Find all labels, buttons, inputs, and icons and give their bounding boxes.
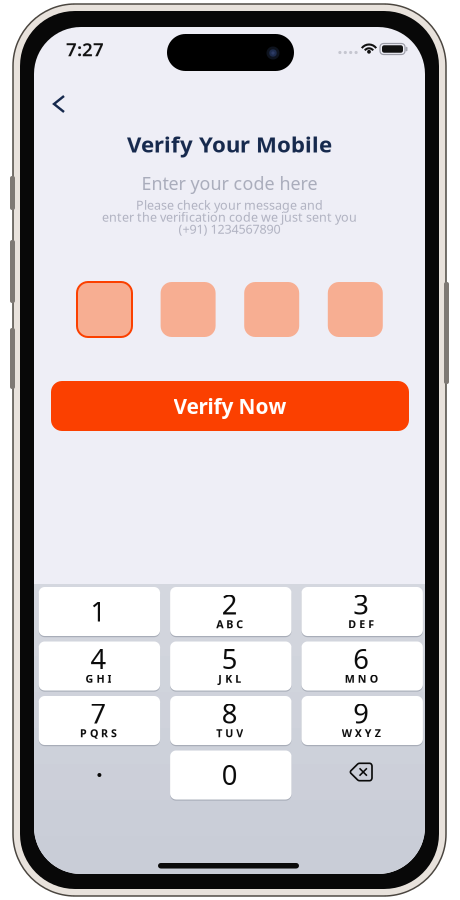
button[interactable]: Back (45, 89, 83, 129)
staticText: M N O (345, 671, 378, 686)
staticText: 6 (353, 640, 369, 677)
button[interactable]: Verification code digit (328, 282, 383, 337)
staticText: 1 (90, 592, 106, 630)
staticText: T U V (216, 726, 243, 740)
staticText: (+91) 1234567890 (178, 220, 280, 238)
button[interactable]: 3 (301, 587, 423, 636)
staticText: 4 (90, 640, 106, 677)
button[interactable]: 2 (170, 587, 291, 636)
staticText: Verify Your Mobile (127, 129, 332, 159)
staticText: 7 (90, 694, 106, 732)
staticText: 8 (222, 694, 238, 732)
button[interactable]: 9 (301, 696, 423, 745)
button[interactable]: 0 (170, 750, 291, 799)
button[interactable]: 4 (39, 641, 160, 690)
button[interactable]: Verification code digit (161, 282, 216, 337)
staticText: 2 (222, 585, 238, 623)
staticText: 3 (353, 585, 369, 623)
button[interactable]: Verification code digit (77, 282, 132, 337)
button[interactable]: 7 (39, 696, 160, 745)
staticText: J K L (218, 671, 241, 686)
button[interactable]: 8 (170, 696, 291, 745)
staticText: A B C (216, 617, 243, 631)
staticText: 5 (222, 640, 238, 677)
staticText: G H I (85, 671, 111, 686)
staticText: Please check your message and (136, 196, 323, 214)
staticText: 9 (353, 694, 369, 732)
staticText: 0 (222, 756, 238, 793)
button[interactable]: Delete (301, 750, 423, 799)
staticText: enter the verification code we just sent… (102, 208, 357, 226)
button[interactable]: Verify Now (51, 381, 409, 431)
staticText: P Q R S (80, 726, 117, 740)
staticText: W X Y Z (342, 726, 381, 740)
button[interactable]: Decimal point (39, 750, 160, 799)
staticText: Verify Now (173, 392, 286, 420)
button[interactable]: 6 (301, 641, 423, 690)
staticText: D E F (348, 617, 374, 631)
button[interactable]: Verification code digit (244, 282, 299, 337)
button[interactable]: 5 (170, 641, 291, 690)
staticText: 7:27 (66, 37, 104, 61)
button[interactable]: 1 (39, 587, 160, 636)
staticText: Enter your code here (141, 171, 317, 195)
